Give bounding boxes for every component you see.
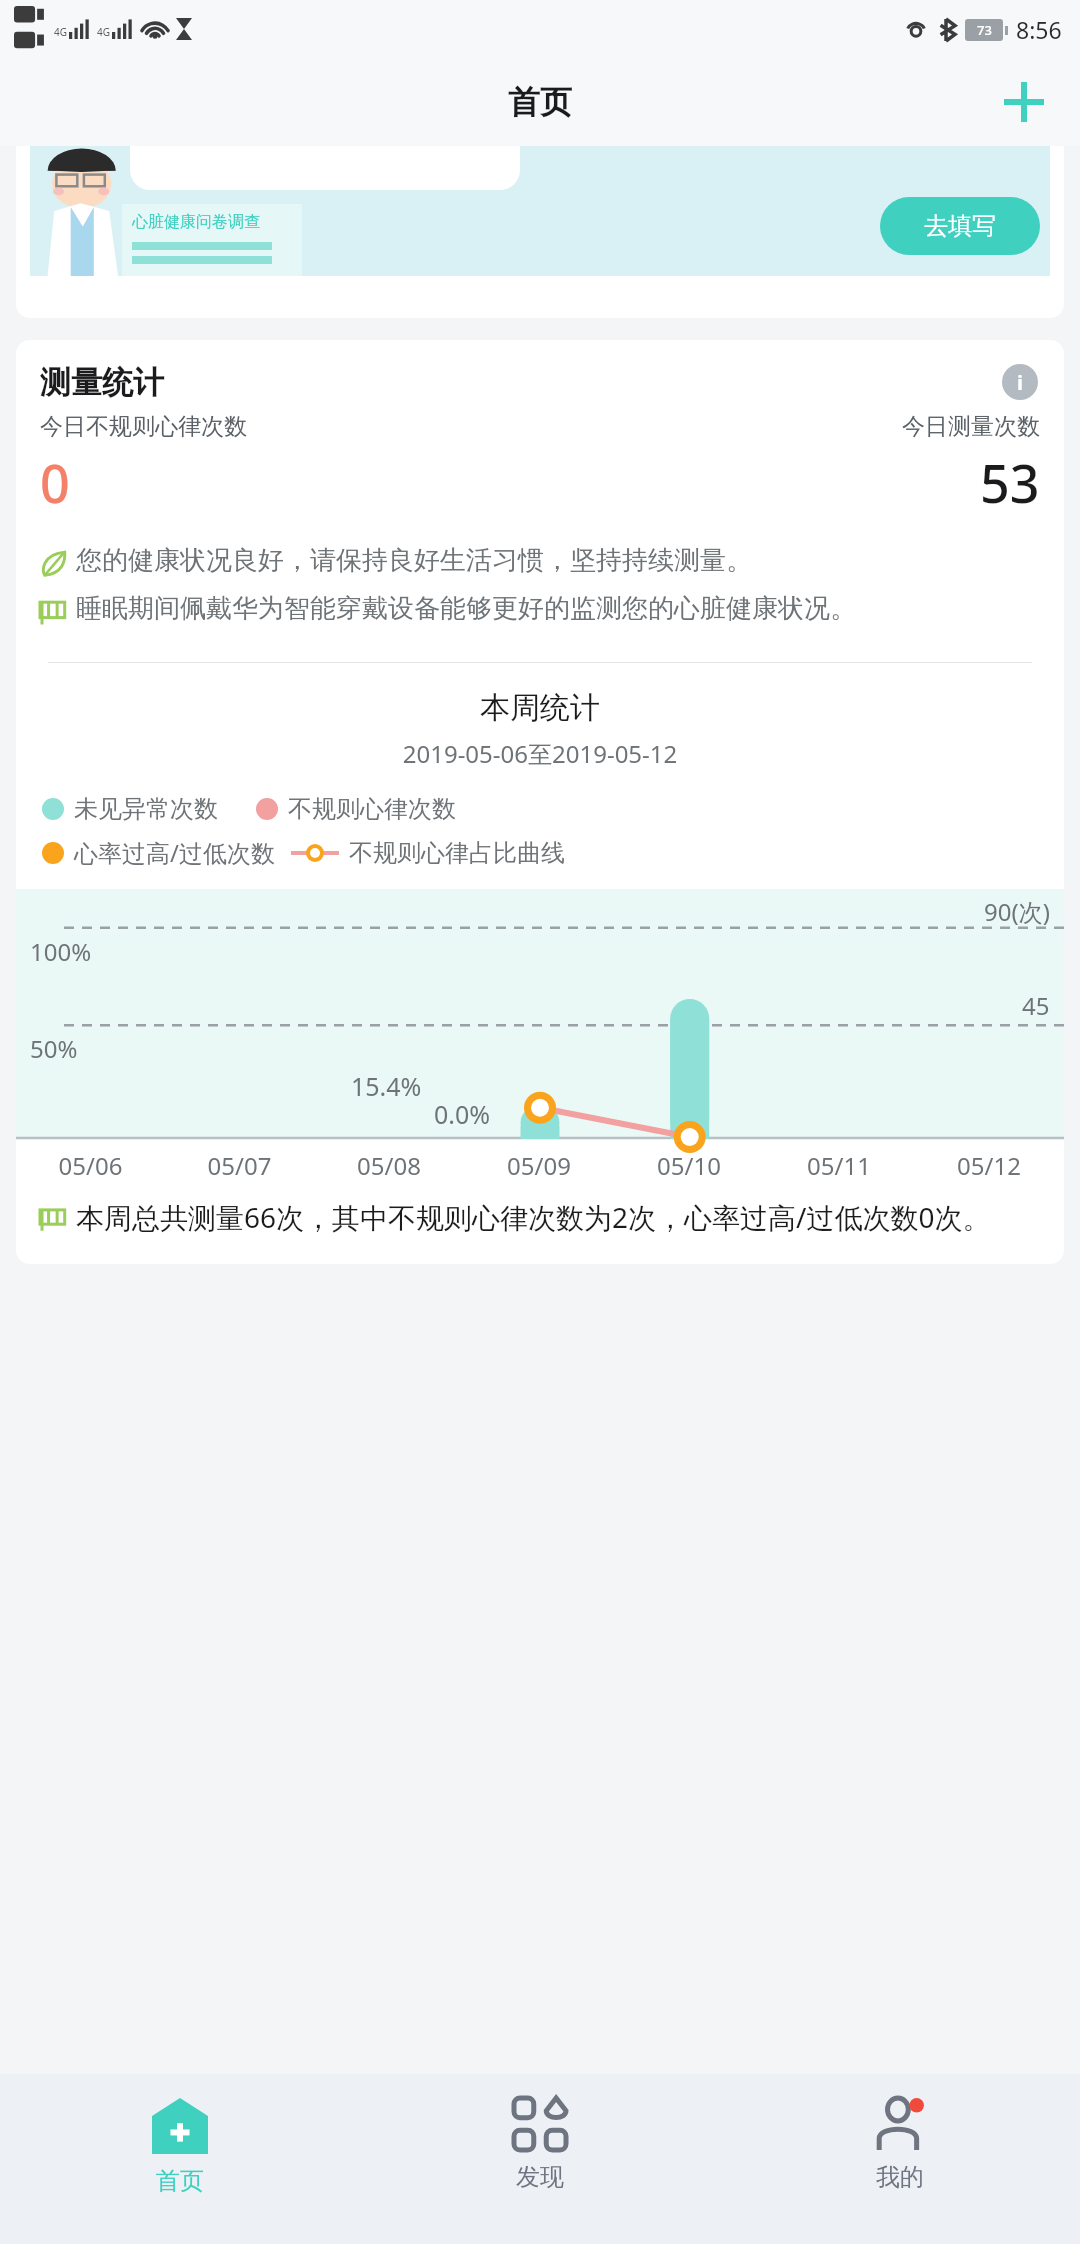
staticText: 05/09	[464, 1149, 614, 1182]
staticText: 2019-05-06至2019-05-12	[16, 737, 1064, 770]
staticText: 发现	[516, 2162, 564, 2192]
staticText: 05/07	[165, 1149, 314, 1182]
staticText: 未见异常次数	[74, 794, 218, 824]
staticText: 05/06	[16, 1149, 165, 1182]
button[interactable]: Add	[996, 74, 1052, 130]
staticText: 今日不规则心律次数	[40, 412, 247, 441]
staticText: 15.4%	[351, 1069, 422, 1103]
staticText: 测量统计	[40, 363, 164, 402]
staticText: 05/12	[914, 1149, 1064, 1182]
staticText: 睡眠期间佩戴华为智能穿戴设备能够更好的监测您的心脏健康状况。	[76, 592, 856, 625]
staticText: 4G	[54, 25, 67, 39]
button[interactable]: 发现	[360, 2074, 720, 2244]
staticText: 本周总共测量66次，其中不规则心律次数为2次，心率过高/过低次数0次。	[76, 1198, 991, 1236]
staticText: 0.0%	[434, 1097, 491, 1131]
staticText: 45	[1022, 989, 1050, 1022]
staticText: 今日测量次数	[902, 412, 1040, 441]
staticText: 8:56	[1016, 14, 1062, 45]
staticText: 53	[980, 447, 1040, 518]
button[interactable]: 心脏健康问卷调查	[16, 146, 1064, 318]
staticText: 0	[40, 447, 70, 518]
staticText: 不规则心律占比曲线	[349, 838, 565, 868]
staticText: 首页	[156, 2166, 204, 2196]
staticText: 05/11	[764, 1149, 914, 1182]
staticText: 本周统计	[16, 689, 1064, 727]
staticText: 73	[977, 21, 992, 39]
staticText: 您的健康状况良好，请保持良好生活习惯，坚持持续测量。	[76, 544, 752, 577]
staticText: 4G	[97, 25, 110, 39]
staticText: 50%	[30, 1032, 78, 1065]
staticText: 不规则心律次数	[288, 794, 456, 824]
staticText: 我的	[876, 2162, 924, 2192]
staticText: 05/08	[314, 1149, 464, 1182]
staticText: 首页	[508, 82, 572, 122]
button[interactable]: 去填写	[880, 197, 1040, 255]
staticText: 去填写	[924, 211, 996, 241]
staticText: 100%	[30, 935, 92, 968]
staticText: i	[1017, 369, 1023, 396]
staticText: 心率过高/过低次数	[74, 836, 275, 869]
staticText: 05/10	[614, 1149, 764, 1182]
button[interactable]: 我的	[720, 2074, 1080, 2244]
button[interactable]: 首页	[0, 2074, 360, 2244]
button[interactable]: Info	[1000, 362, 1040, 402]
staticText: 90(次)	[984, 895, 1050, 928]
staticText: 心脏健康问卷调查	[132, 212, 260, 232]
